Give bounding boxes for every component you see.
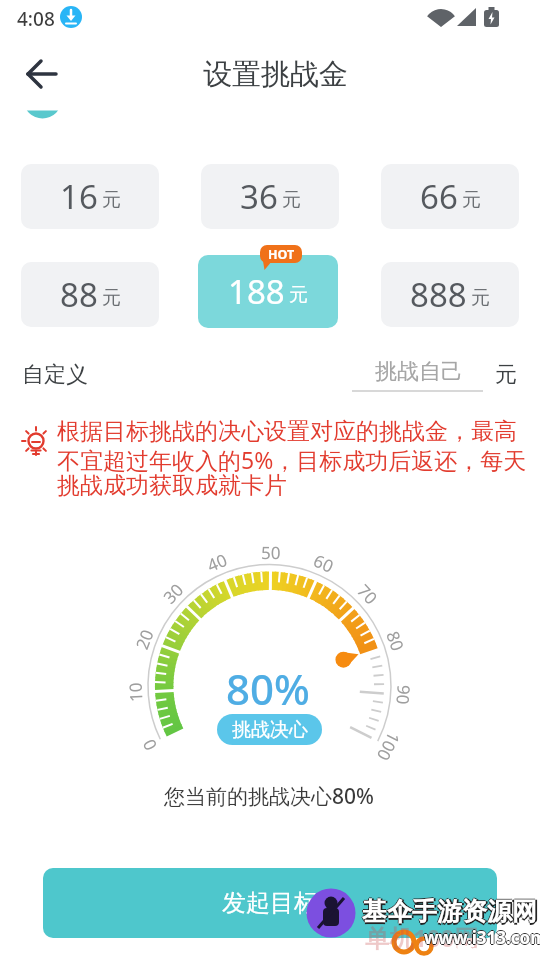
- staticText: 根据目标挑战的决心设置对应的挑战金，最高: [57, 417, 517, 446]
- staticText: 4:08: [17, 6, 55, 32]
- staticText: 70: [353, 579, 383, 609]
- staticText: 基伞手游资源网: [362, 898, 537, 929]
- staticText: 80%: [226, 660, 310, 717]
- staticText: www.i313.com: [423, 926, 540, 949]
- staticText: HOT: [268, 246, 295, 263]
- staticText: 挑战成功获取成就卡片: [57, 471, 287, 500]
- staticText: 元: [282, 188, 301, 212]
- staticText: 30: [158, 578, 188, 608]
- staticText: www.i313.com: [424, 925, 540, 948]
- button[interactable]: 88: [21, 262, 159, 327]
- staticText: 您当前的挑战决心80%: [164, 782, 374, 811]
- staticText: 36: [240, 174, 278, 219]
- staticText: 100: [372, 729, 406, 765]
- staticText: 元: [471, 286, 490, 310]
- staticText: 50: [261, 541, 281, 563]
- staticText: 基伞手游资源网: [362, 895, 537, 926]
- staticText: 88: [60, 272, 98, 317]
- staticText: 元: [495, 361, 517, 389]
- staticText: 单机100网: [365, 921, 479, 954]
- staticText: 80: [382, 628, 410, 654]
- button[interactable]: 36: [201, 164, 339, 229]
- staticText: 66: [420, 174, 458, 219]
- staticText: 20: [130, 626, 158, 652]
- staticText: 90: [392, 684, 416, 706]
- staticText: 发起目标: [222, 888, 318, 918]
- button[interactable]: 888: [381, 262, 519, 327]
- staticText: www.i313.com: [424, 926, 540, 949]
- staticText: 188: [228, 269, 285, 314]
- staticText: 自定义: [22, 361, 88, 389]
- staticText: 10: [123, 681, 146, 702]
- staticText: 元: [102, 286, 121, 310]
- staticText: 40: [203, 548, 230, 576]
- staticText: 基伞手游资源网: [361, 896, 536, 927]
- button[interactable]: 188: [198, 255, 338, 328]
- staticText: 888: [410, 272, 467, 317]
- staticText: 0: [137, 736, 161, 754]
- staticText: 16: [60, 174, 98, 219]
- button[interactable]: 16: [21, 164, 159, 229]
- staticText: 挑战决心: [232, 718, 308, 742]
- staticText: 挑战自己: [375, 358, 463, 386]
- staticText: 基伞手游资源网: [362, 896, 537, 927]
- staticText: 设置挑战金: [203, 56, 348, 93]
- staticText: 元: [102, 188, 121, 212]
- staticText: www.i313.com: [425, 926, 540, 949]
- staticText: 60: [310, 549, 338, 577]
- button[interactable]: 发起目标: [43, 868, 497, 938]
- staticText: 基伞手游资源网: [364, 896, 539, 927]
- staticText: 不宜超过年收入的5%，目标成功后返还，每天: [57, 444, 527, 475]
- button[interactable]: 66: [381, 164, 519, 229]
- staticText: danji100.com: [452, 941, 540, 960]
- staticText: www.i313.com: [424, 927, 540, 950]
- button[interactable]: 挑战决心: [217, 714, 322, 745]
- staticText: 元: [289, 283, 308, 307]
- staticText: 元: [462, 188, 481, 212]
